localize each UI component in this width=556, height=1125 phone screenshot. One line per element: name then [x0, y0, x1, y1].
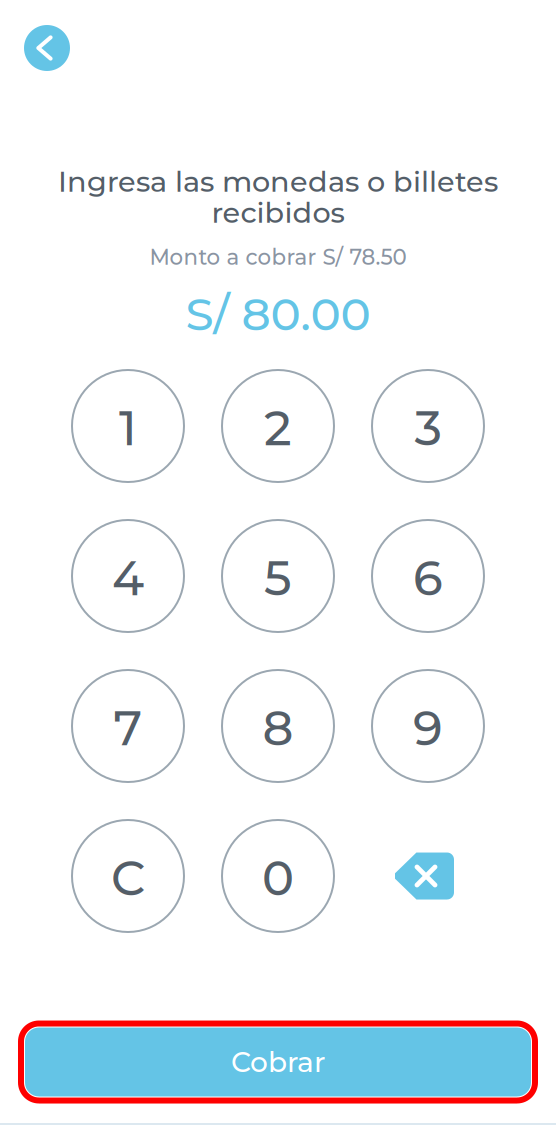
staticText: 4 — [112, 549, 144, 607]
button[interactable]: 2 — [203, 351, 353, 501]
staticText: 0 — [262, 849, 294, 907]
button[interactable]: 5 — [203, 501, 353, 651]
staticText: recibidos — [211, 195, 344, 230]
staticText: Monto a cobrar S/ 78.50 — [149, 244, 406, 270]
button[interactable]: 0 — [203, 801, 353, 951]
button[interactable]: 1 — [53, 351, 203, 501]
button[interactable]: 9 — [353, 651, 503, 801]
staticText: 2 — [264, 399, 292, 457]
staticText: 9 — [413, 699, 443, 757]
staticText: 6 — [413, 549, 443, 607]
staticText: S/ 80.00 — [185, 286, 370, 342]
staticText: Cobrar — [231, 1045, 325, 1079]
button[interactable]: 7 — [53, 651, 203, 801]
button[interactable]: 8 — [203, 651, 353, 801]
button[interactable]: Cobrar — [25, 1027, 531, 1096]
staticText: 1 — [119, 399, 137, 457]
button[interactable]: 4 — [53, 501, 203, 651]
staticText: C — [111, 849, 145, 907]
button[interactable]: Delete — [353, 801, 503, 951]
staticText: Ingresa las monedas o billetes — [58, 164, 498, 199]
staticText: 8 — [262, 699, 293, 757]
staticText: 5 — [264, 549, 292, 607]
button[interactable]: C — [53, 801, 203, 951]
button[interactable]: Back — [24, 25, 70, 71]
staticText: 7 — [113, 699, 142, 757]
button[interactable]: 6 — [353, 501, 503, 651]
staticText: 3 — [414, 399, 441, 457]
button[interactable]: 3 — [353, 351, 503, 501]
